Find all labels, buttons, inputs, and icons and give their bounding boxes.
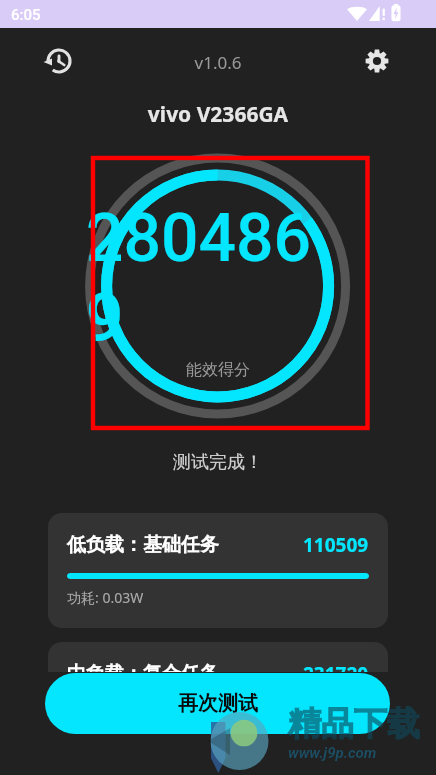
button[interactable]: 中负载：复合任务: [48, 642, 388, 672]
staticText: 再次测试: [178, 691, 258, 716]
staticText: 测试完成！: [0, 451, 436, 474]
staticText: 2804869: [86, 200, 318, 357]
staticText: vivo V2366GA: [0, 100, 436, 129]
button[interactable]: History: [38, 40, 80, 82]
staticText: 6:05: [11, 6, 41, 24]
staticText: 功耗: 0.03W: [67, 588, 144, 607]
button[interactable]: 再次测试: [45, 673, 390, 734]
staticText: www.j9p.com: [288, 744, 377, 762]
button[interactable]: 低负载：基础任务: [48, 513, 388, 628]
staticText: 中负载：复合任务: [67, 662, 219, 672]
staticText: 110509: [303, 532, 369, 558]
staticText: v1.0.6: [0, 51, 436, 74]
staticText: 精品下载: [288, 703, 420, 745]
button[interactable]: Settings: [356, 40, 398, 82]
staticText: 231720: [303, 661, 369, 672]
staticText: 能效得分: [0, 360, 436, 380]
staticText: 低负载：基础任务: [67, 533, 219, 557]
